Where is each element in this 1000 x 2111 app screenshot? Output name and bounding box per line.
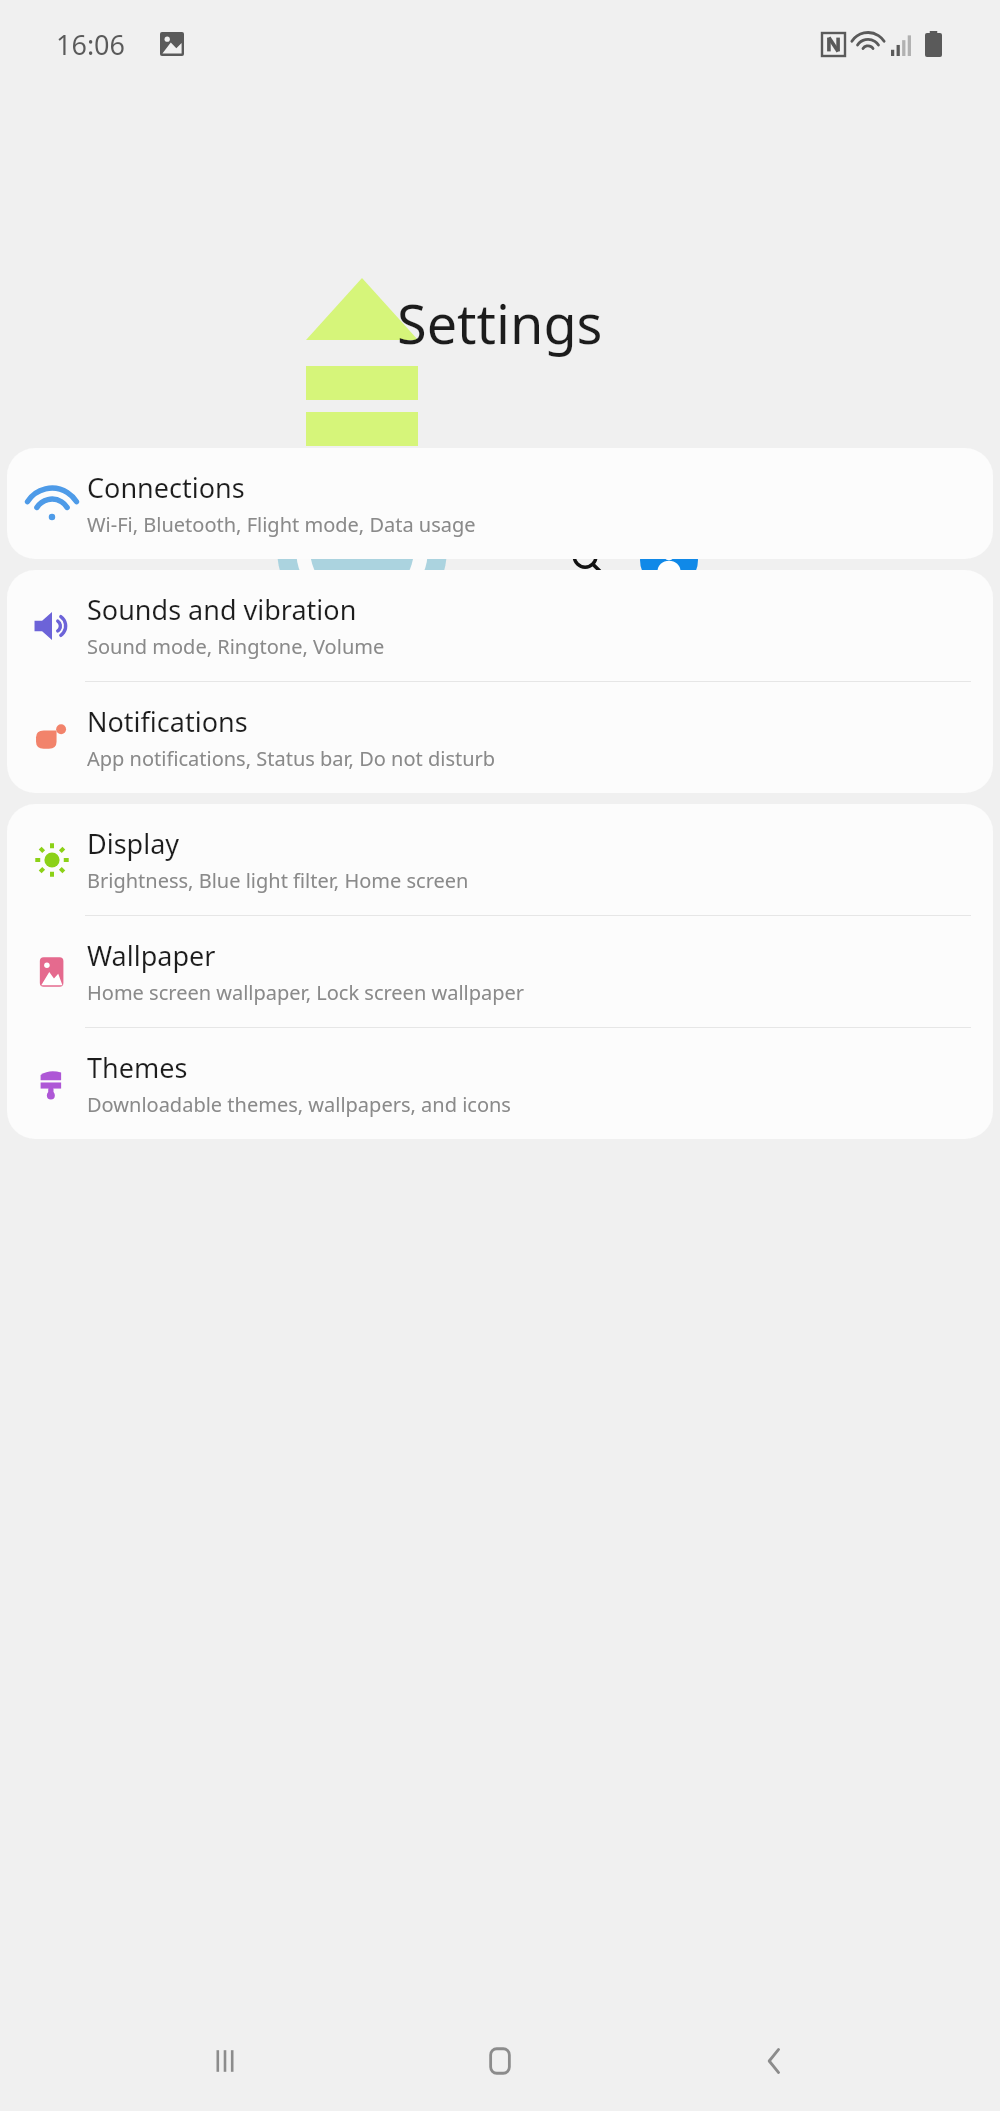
button[interactable]: Recent apps (175, 2011, 275, 2111)
staticText: Sound mode, Ringtone, Volume (87, 633, 385, 660)
button[interactable]: Back (725, 2011, 825, 2111)
button[interactable]: Sounds and vibration (7, 570, 993, 681)
staticText: Sounds and vibration (87, 591, 357, 628)
staticText: Downloadable themes, wallpapers, and ico… (87, 1091, 511, 1118)
button[interactable]: Wallpaper (7, 916, 993, 1027)
staticText: Connections (87, 469, 245, 506)
staticText: Notifications (87, 703, 248, 740)
staticText: Wallpaper (87, 937, 216, 974)
staticText: Wi-Fi, Bluetooth, Flight mode, Data usag… (87, 511, 476, 538)
button[interactable]: Display (7, 804, 993, 915)
staticText: Settings (397, 286, 603, 360)
button[interactable]: Home (450, 2011, 550, 2111)
staticText: Brightness, Blue light filter, Home scre… (87, 867, 469, 894)
staticText: Home screen wallpaper, Lock screen wallp… (87, 979, 525, 1006)
staticText: 16:06 (56, 26, 126, 63)
button[interactable]: Themes (7, 1028, 993, 1139)
button[interactable]: Connections (7, 448, 993, 559)
button[interactable]: Notifications (7, 682, 993, 793)
staticText: App notifications, Status bar, Do not di… (87, 745, 496, 772)
staticText: Themes (87, 1049, 188, 1086)
staticText: Display (87, 825, 180, 862)
button[interactable]: Account (640, 531, 698, 589)
button[interactable]: Search (556, 528, 620, 592)
